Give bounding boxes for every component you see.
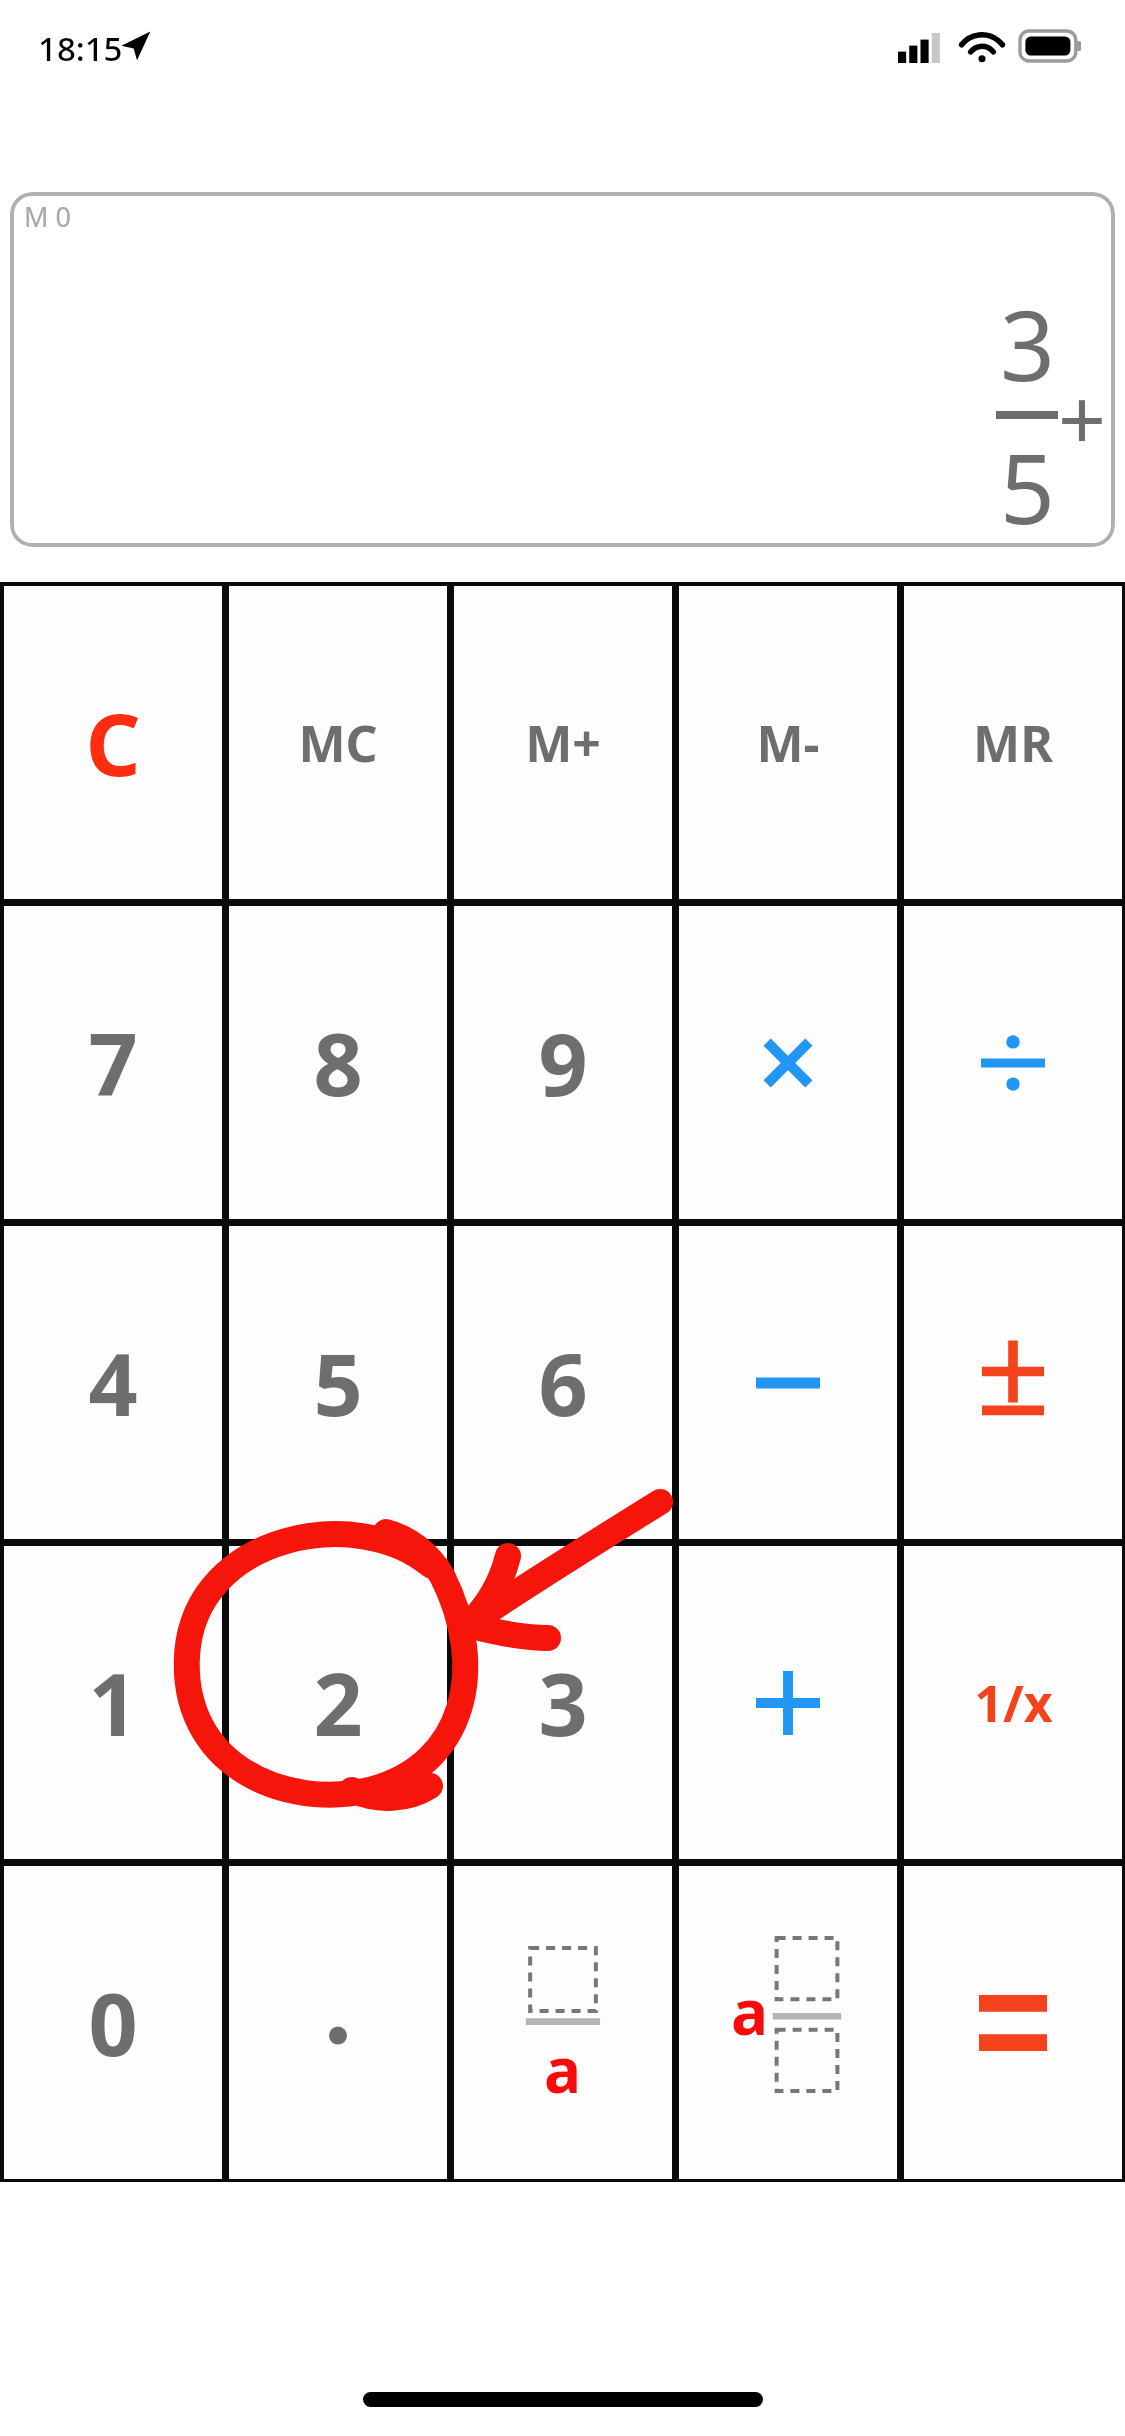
button[interactable]: M+ [454,586,672,899]
staticText: MR [973,709,1053,777]
button[interactable] [904,906,1122,1219]
button[interactable]: Fraction [454,1866,672,2179]
button[interactable] [679,906,897,1219]
staticText: 7 [88,1004,138,1121]
staticText: 9 [538,1004,588,1121]
staticText: C [85,684,141,801]
button[interactable] [679,1226,897,1539]
staticText: M- [756,709,820,777]
button[interactable]: M 0 [10,192,1115,547]
staticText: a [544,2027,582,2111]
staticText: 1 [88,1644,138,1761]
button[interactable] [904,1866,1122,2179]
button[interactable]: 2 [229,1546,447,1859]
staticText: 8 [313,1004,363,1121]
staticText: 0 [88,1964,138,2081]
staticText: M 0 [24,198,71,235]
button[interactable]: M- [679,586,897,899]
button[interactable]: 3 [454,1546,672,1859]
button[interactable]: 5 [229,1226,447,1539]
button[interactable]: 1/x [904,1546,1122,1859]
button[interactable]: 9 [454,906,672,1219]
button[interactable]: Mixed fraction [679,1866,897,2179]
staticText: 18:15 [38,26,123,71]
staticText: 5 [313,1324,363,1441]
button[interactable]: 6 [454,1226,672,1539]
button[interactable]: 7 [4,906,222,1219]
staticText: a [731,1969,769,2053]
button[interactable]: 8 [229,906,447,1219]
button[interactable]: MR [904,586,1122,899]
staticText: 2 [313,1644,363,1761]
staticText: + [1058,360,1107,474]
staticText: 6 [538,1324,588,1441]
staticText: 3 [1000,278,1055,409]
staticText: M+ [525,709,601,777]
button[interactable] [229,1866,447,2179]
staticText: 1/x [974,1669,1053,1737]
button[interactable]: 0 [4,1866,222,2179]
button[interactable]: 4 [4,1226,222,1539]
staticText: MC [298,709,378,777]
button[interactable]: 1 [4,1546,222,1859]
button[interactable]: MC [229,586,447,899]
button[interactable] [679,1546,897,1859]
button[interactable]: C [4,586,222,899]
staticText: 5 [1000,421,1055,547]
button[interactable] [904,1226,1122,1539]
staticText: 3 [538,1644,588,1761]
staticText: 4 [88,1324,138,1441]
